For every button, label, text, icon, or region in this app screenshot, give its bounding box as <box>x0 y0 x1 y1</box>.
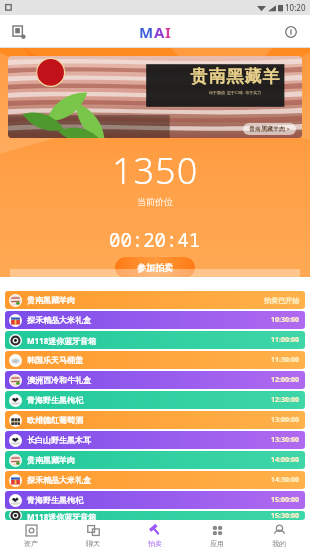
staticText: 长白山野生黑木耳 <box>27 435 91 445</box>
staticText: I <box>165 22 171 42</box>
staticText: 已开始 <box>142 255 169 266</box>
staticText: 资产 <box>24 539 38 548</box>
button[interactable]: M118迷你蓝牙音箱 <box>5 331 305 349</box>
staticText: 应用 <box>210 539 224 548</box>
button[interactable]: 应用 <box>186 520 248 552</box>
staticText: 始于颜值 忠于口味 信于实力 <box>209 90 262 95</box>
staticText: 15:30:00 <box>271 511 299 520</box>
button[interactable]: 澳洲西冷和牛礼盒 <box>5 371 305 389</box>
staticText: 拍卖 <box>148 539 162 548</box>
staticText: 14:30:00 <box>271 475 299 485</box>
staticText: 我的 <box>272 539 286 548</box>
staticText: 贵南黑藏羊肉 <box>27 295 75 305</box>
button[interactable]: 青海野生黑枸杞 <box>5 491 305 509</box>
button[interactable]: 我的 <box>248 520 310 552</box>
button[interactable]: 贵南黑藏羊肉 > <box>249 125 290 133</box>
button[interactable]: 青海野生黑枸杞 <box>5 391 305 409</box>
button[interactable]: 贵南黑藏羊 <box>8 56 302 138</box>
staticText: 10:30:00 <box>271 315 299 325</box>
button[interactable]: 贵南黑藏羊肉 <box>5 291 305 309</box>
button[interactable]: 探禾精品大米礼盒 <box>5 311 305 329</box>
button[interactable]: 探禾精品大米礼盒 <box>5 471 305 489</box>
staticText: 探禾精品大米礼盒 <box>27 315 91 325</box>
staticText: 11:30:00 <box>271 355 299 365</box>
staticText: 聊天 <box>86 539 100 548</box>
staticText: M118迷你蓝牙音箱 <box>27 335 97 346</box>
button[interactable]: 聊天 <box>62 520 124 552</box>
staticText: 贵南黑藏羊肉 > <box>249 125 290 133</box>
staticText: 10:20 <box>285 2 306 13</box>
staticText: 参加拍卖 <box>137 262 173 273</box>
staticText: M <box>139 22 154 42</box>
staticText: 13:00:00 <box>271 415 299 425</box>
staticText: 1350 <box>112 146 199 195</box>
staticText: 14:00:00 <box>271 455 299 465</box>
button[interactable]: 长白山野生黑木耳 <box>5 431 305 449</box>
button[interactable]: 贵南黑藏羊肉 <box>5 451 305 469</box>
button[interactable]: M118迷你蓝牙音箱 <box>5 511 305 520</box>
button[interactable]: 欧维德红葡萄酒 <box>5 411 305 429</box>
staticText: 贵南黑藏羊 <box>190 66 280 87</box>
staticText: 15:00:00 <box>271 495 299 505</box>
staticText: A <box>154 22 165 42</box>
staticText: 00:20:41 <box>109 227 201 253</box>
staticText: 青海野生黑枸杞 <box>27 495 83 505</box>
button[interactable]: 拍卖 <box>124 520 186 552</box>
button[interactable]: 韩国乐天马桶盖 <box>5 351 305 369</box>
staticText: 青海野生黑枸杞 <box>27 395 83 405</box>
staticText: 拍卖已开始 <box>264 296 299 305</box>
staticText: 澳洲西冷和牛礼盒 <box>27 375 91 385</box>
staticText: 12:00:00 <box>271 375 299 385</box>
button[interactable]: 参加拍卖 <box>115 257 195 278</box>
button[interactable]: 资产 <box>0 520 62 552</box>
staticText: 欧维德红葡萄酒 <box>27 415 83 425</box>
staticText: 贵南黑藏羊肉 <box>27 455 75 465</box>
button[interactable]: Scan <box>6 19 32 45</box>
staticText: 韩国乐天马桶盖 <box>27 355 83 365</box>
staticText: 12:30:00 <box>271 395 299 405</box>
staticText: 13:30:00 <box>271 435 299 445</box>
staticText: M118迷你蓝牙音箱 <box>27 511 97 520</box>
button[interactable]: Info <box>278 19 304 45</box>
staticText: 探禾精品大米礼盒 <box>27 475 91 485</box>
staticText: 当前价位 <box>137 196 173 207</box>
staticText: 11:00:00 <box>271 335 299 345</box>
